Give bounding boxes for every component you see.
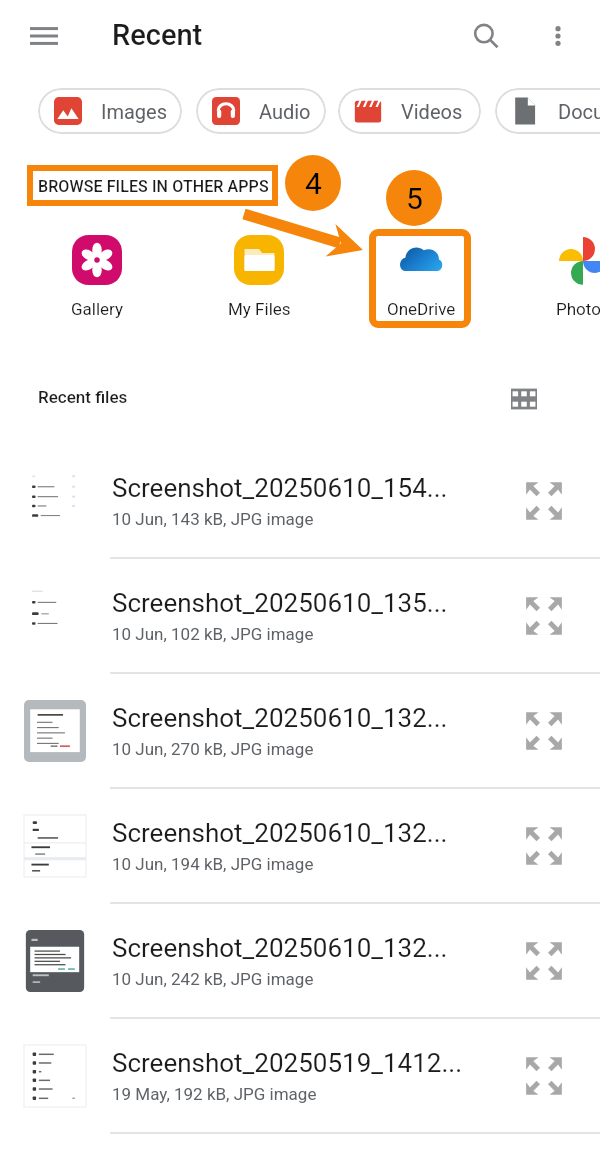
button[interactable]: Open file [521, 823, 567, 869]
staticText: 10 Jun, 194 kB, JPG image [112, 854, 314, 874]
button[interactable]: Screenshot_20250610_135... [0, 559, 600, 674]
staticText: OneDrive [387, 299, 456, 319]
staticText: 10 Jun, 242 kB, JPG image [112, 969, 314, 989]
button[interactable]: More options [535, 13, 581, 59]
button[interactable]: OneDrive [361, 235, 481, 319]
staticText: Recent files [38, 387, 128, 407]
staticText: 5 [406, 181, 423, 216]
button[interactable]: Open file [521, 1053, 567, 1099]
button[interactable]: Screenshot_20250519_1412... [0, 1019, 600, 1134]
staticText: 10 Jun, 143 kB, JPG image [112, 509, 314, 529]
staticText: Videos [401, 100, 463, 123]
staticText: Screenshot_20250610_132... [112, 703, 448, 733]
staticText: Screenshot_20250610_154... [112, 473, 448, 503]
button[interactable]: Audio [196, 88, 326, 134]
button[interactable]: Screenshot_20250610_154... [0, 444, 600, 559]
staticText: 10 Jun, 270 kB, JPG image [112, 739, 314, 759]
button[interactable]: Screenshot_20250610_132... [0, 674, 600, 789]
staticText: BROWSE FILES IN OTHER APPS [38, 177, 269, 196]
staticText: 10 Jun, 102 kB, JPG image [112, 624, 314, 644]
staticText: Recent [112, 18, 203, 52]
button[interactable]: Photos [523, 235, 600, 319]
button[interactable]: Docu [495, 88, 600, 134]
staticText: Images [101, 100, 168, 123]
button[interactable]: Open file [521, 708, 567, 754]
staticText: My Files [228, 299, 291, 319]
button[interactable]: Open file [521, 478, 567, 524]
staticText: Screenshot_20250610_132... [112, 933, 448, 963]
button[interactable]: Switch to grid view [505, 380, 543, 418]
button[interactable]: Navigation menu [21, 13, 67, 59]
button[interactable]: Search [463, 13, 509, 59]
staticText: Gallery [71, 299, 124, 319]
staticText: Screenshot_20250610_132... [112, 818, 448, 848]
button[interactable]: Screenshot_20250610_132... [0, 904, 600, 1019]
staticText: Screenshot_20250519_1412... [112, 1048, 462, 1078]
button[interactable]: My Files [199, 235, 319, 319]
staticText: Screenshot_20250610_135... [112, 588, 448, 618]
staticText: Docu [558, 100, 600, 123]
button[interactable]: Gallery [37, 235, 157, 319]
button[interactable]: Screenshot_20250610_132... [0, 789, 600, 904]
button[interactable]: Images [38, 88, 182, 134]
staticText: 19 May, 192 kB, JPG image [112, 1084, 317, 1104]
staticText: Photos [556, 299, 600, 319]
button[interactable]: Open file [521, 593, 567, 639]
staticText: 4 [305, 166, 322, 201]
button[interactable]: Open file [521, 938, 567, 984]
button[interactable]: Videos [338, 88, 481, 134]
staticText: Audio [259, 100, 311, 123]
